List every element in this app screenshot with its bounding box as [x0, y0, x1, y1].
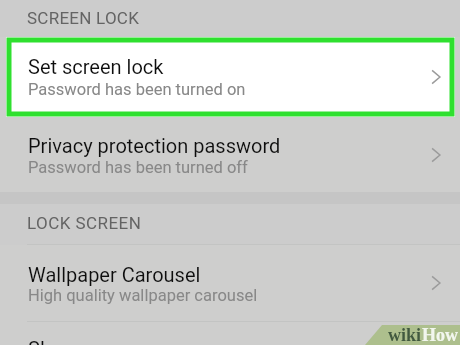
staticText: High quality wallpaper carousel	[28, 286, 258, 305]
staticText: Sleep	[28, 337, 78, 345]
button[interactable]: Wallpaper Carousel	[0, 245, 460, 321]
staticText: Wallpaper Carousel	[28, 263, 201, 286]
staticText: How	[422, 325, 458, 345]
button[interactable]: Sleep	[0, 321, 460, 345]
staticText: LOCK SCREEN	[27, 213, 142, 233]
button[interactable]: Set screen lock	[0, 37, 460, 117]
staticText: wiki	[388, 325, 422, 345]
staticText: Set screen lock	[28, 55, 164, 78]
staticText: Password has been turned on	[28, 80, 246, 99]
staticText: SCREEN LOCK	[27, 8, 140, 28]
staticText: Password has been turned off	[28, 158, 248, 177]
button[interactable]: Privacy protection password	[0, 117, 460, 192]
staticText: Privacy protection password	[28, 134, 281, 157]
